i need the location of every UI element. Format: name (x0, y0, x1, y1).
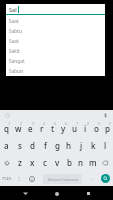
staticText: w (15, 123, 22, 134)
staticText: y (61, 123, 66, 134)
staticText: p (105, 123, 110, 134)
staticText: 0 (109, 121, 112, 126)
staticText: Saat (9, 18, 19, 25)
staticText: t (51, 123, 55, 134)
staticText: 5 (54, 121, 57, 126)
button[interactable]: Recent apps (82, 187, 95, 200)
button[interactable]: o (91, 120, 102, 137)
button[interactable]: Search (101, 174, 110, 183)
button[interactable]: v (51, 154, 63, 171)
staticText: m (89, 157, 97, 168)
staticText: 1 (8, 121, 11, 126)
button[interactable]: j (75, 137, 87, 154)
button[interactable]: w (12, 120, 24, 137)
staticText: q (4, 123, 9, 134)
button[interactable]: h (63, 137, 75, 154)
staticText: Sabun (9, 68, 24, 75)
button[interactable]: ?123 (0, 171, 13, 186)
button[interactable]: n (75, 154, 87, 171)
button[interactable]: Sabun (6, 66, 105, 76)
staticText: b (67, 157, 72, 168)
button[interactable]: b (63, 154, 75, 171)
staticText: u (72, 123, 78, 134)
staticText: 9 (98, 121, 101, 126)
button[interactable]: Sangat (6, 56, 105, 66)
button[interactable]: d (26, 137, 39, 154)
staticText: 2 (20, 121, 23, 126)
button[interactable]: Emoji (25, 171, 38, 186)
staticText: o (94, 123, 99, 134)
button[interactable]: a (0, 137, 13, 154)
staticText: c (43, 157, 47, 168)
button[interactable]: i (80, 120, 91, 137)
staticText: Sabtu (9, 28, 22, 35)
staticText: k (91, 140, 96, 151)
staticText: e (28, 123, 33, 134)
staticText: j (80, 140, 83, 151)
staticText: g (55, 140, 60, 151)
staticText: Sangat (9, 58, 25, 65)
button[interactable]: k (87, 137, 99, 154)
staticText: z (18, 157, 22, 168)
button[interactable]: t (47, 120, 58, 137)
button[interactable]: e (24, 120, 36, 137)
button[interactable]: u (69, 120, 80, 137)
button[interactable]: Sakit (6, 46, 105, 56)
button[interactable]: p (102, 120, 113, 137)
button[interactable]: Backspace (99, 154, 111, 171)
button[interactable]: g (51, 137, 63, 154)
button[interactable]: Home (50, 187, 63, 200)
button[interactable]: Back (19, 187, 32, 200)
button[interactable]: Comma (13, 171, 25, 186)
staticText: x (30, 157, 35, 168)
staticText: a (4, 140, 9, 151)
staticText: 4 (43, 121, 46, 126)
button[interactable]: Voice input (102, 112, 109, 119)
button[interactable]: m (87, 154, 99, 171)
staticText: Sal (9, 6, 17, 13)
staticText: r (40, 123, 44, 134)
staticText: 7 (76, 121, 79, 126)
button[interactable]: Saat (6, 15, 105, 26)
button[interactable]: Saat (6, 36, 105, 46)
staticText: 6 (65, 121, 68, 126)
staticText: Saat (9, 38, 19, 45)
button[interactable]: Shift (0, 154, 13, 171)
button[interactable]: l (99, 137, 111, 154)
staticText: n (78, 157, 84, 168)
staticText: Sakit (9, 48, 20, 55)
staticText: 8 (87, 121, 90, 126)
button[interactable]: f (39, 137, 51, 154)
staticText: s (18, 140, 22, 151)
staticText: f (44, 140, 47, 151)
button[interactable]: r (36, 120, 47, 137)
button[interactable]: c (39, 154, 51, 171)
staticText: h (66, 140, 72, 151)
button[interactable]: s (13, 137, 26, 154)
staticText: Bahasa Indonesia (48, 177, 78, 182)
button[interactable]: Sabtu (6, 26, 105, 36)
staticText: d (30, 140, 35, 151)
staticText: ?123 (2, 176, 12, 182)
staticText: l (104, 140, 107, 151)
button[interactable]: q (0, 120, 12, 137)
button[interactable]: x (26, 154, 39, 171)
staticText: v (55, 157, 60, 168)
button[interactable]: z (13, 154, 26, 171)
staticText: 3 (32, 121, 35, 126)
button[interactable]: y (58, 120, 69, 137)
button[interactable]: Space (43, 174, 82, 184)
button[interactable]: Google (4, 112, 11, 119)
staticText: i (84, 123, 87, 134)
